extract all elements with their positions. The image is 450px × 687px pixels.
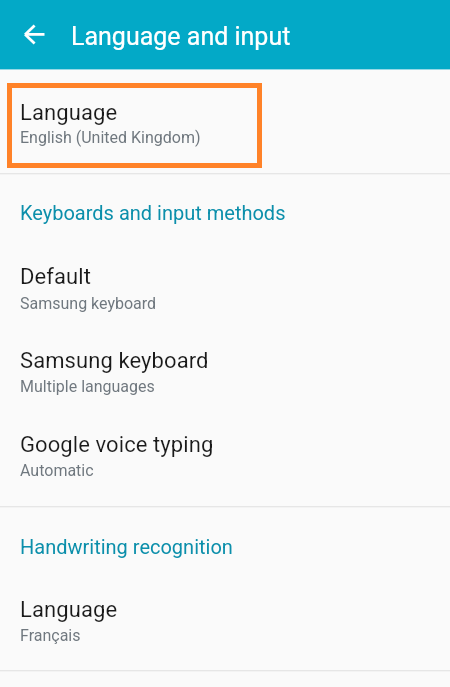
staticText: Default bbox=[20, 264, 92, 290]
button[interactable]: Default bbox=[0, 240, 450, 310]
staticText: Language and input bbox=[71, 22, 291, 51]
button[interactable]: Navigate up bbox=[11, 14, 52, 55]
staticText: Samsung keyboard bbox=[20, 294, 157, 313]
staticText: Language bbox=[20, 100, 118, 126]
staticText: Multiple languages bbox=[20, 377, 155, 396]
staticText: Automatic bbox=[20, 461, 94, 480]
button[interactable]: Language bbox=[0, 573, 450, 643]
staticText: Language bbox=[20, 597, 118, 623]
staticText: Samsung keyboard bbox=[20, 348, 209, 374]
staticText: Français bbox=[20, 626, 81, 645]
button[interactable]: Google voice typing bbox=[0, 408, 450, 478]
staticText: Google voice typing bbox=[20, 432, 214, 458]
staticText: Handwriting recognition bbox=[20, 535, 233, 558]
button[interactable]: Samsung keyboard bbox=[0, 324, 450, 394]
button[interactable]: Language bbox=[0, 69, 450, 173]
staticText: English (United Kingdom) bbox=[20, 128, 201, 147]
staticText: Keyboards and input methods bbox=[20, 201, 286, 224]
